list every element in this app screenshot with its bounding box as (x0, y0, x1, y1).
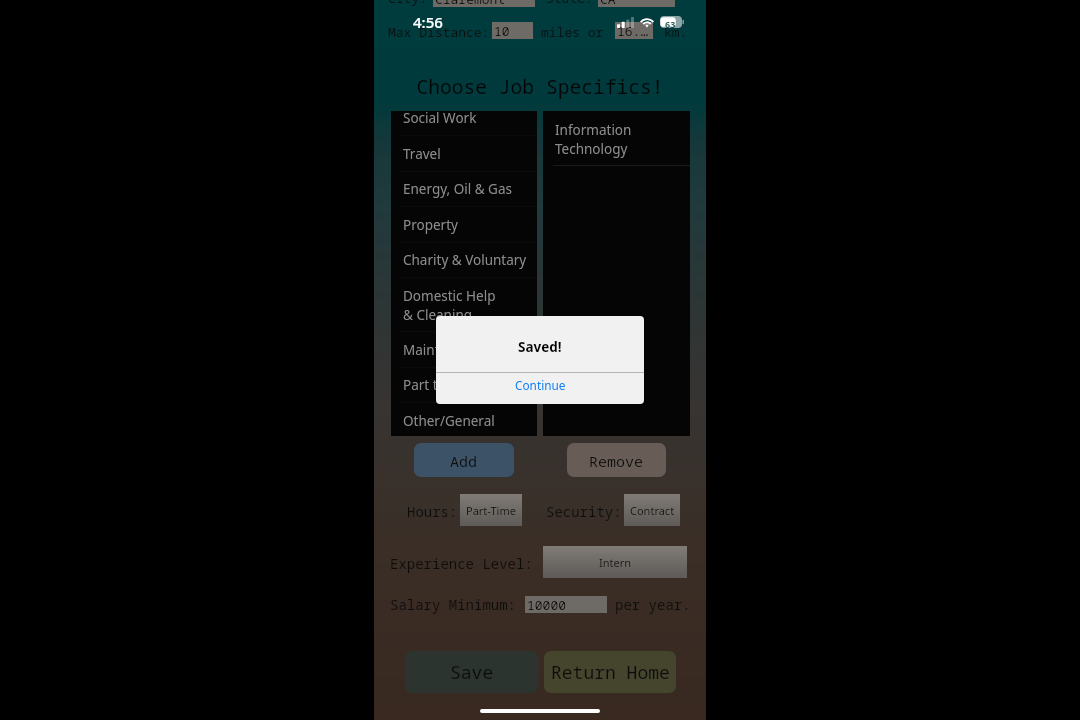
button[interactable]: Energy, Oil & Gas (391, 171, 537, 207)
staticText: Maintenance (403, 341, 486, 359)
staticText: Property (403, 216, 458, 234)
staticText: per year. (615, 595, 691, 614)
button[interactable]: 10000 (525, 596, 607, 613)
staticText: 16.… (617, 22, 649, 39)
staticText: km. (664, 23, 688, 41)
button[interactable]: Continue (436, 373, 644, 404)
staticText: miles or (541, 23, 604, 41)
button[interactable]: Information Technology (543, 112, 690, 166)
button[interactable]: Other/General (391, 403, 537, 436)
staticText: Return Home (551, 660, 670, 685)
staticText: Part time (403, 376, 462, 394)
staticText: State: (546, 0, 593, 7)
staticText: Hours: (407, 502, 458, 521)
button[interactable]: Property (391, 207, 537, 243)
staticText: Domestic Help & Cleaning (403, 287, 496, 323)
staticText: Remove (589, 451, 644, 471)
other: Cellular signal (617, 17, 634, 28)
button[interactable]: Charity & Voluntary (391, 242, 537, 278)
button[interactable]: 16.… (615, 22, 653, 39)
button[interactable]: Contract (624, 494, 680, 526)
button[interactable]: CA (598, 0, 675, 7)
staticText: 4:56 (413, 12, 443, 32)
button[interactable]: Social Work (391, 111, 537, 136)
button[interactable]: Claremont (433, 0, 535, 7)
staticText: Saved! (518, 338, 562, 356)
button[interactable]: Add (414, 443, 514, 477)
staticText: Intern (599, 555, 632, 570)
button[interactable]: Domestic Help & Cleaning (391, 278, 537, 332)
button[interactable]: Part-Time (460, 494, 522, 526)
staticText: 10 (494, 22, 510, 39)
staticText: Save (450, 660, 494, 685)
staticText: Charity & Voluntary (403, 251, 527, 269)
staticText: Energy, Oil & Gas (403, 180, 512, 198)
staticText: Continue (515, 377, 566, 393)
staticText: Social Work (403, 111, 477, 127)
button[interactable]: 10 (492, 22, 533, 39)
staticText: Travel (403, 145, 441, 163)
staticText: Add (450, 451, 478, 471)
button[interactable]: Part time (391, 367, 537, 403)
staticText: Contract (630, 503, 675, 518)
staticText: Experience Level: (390, 554, 533, 573)
other: Battery 63 percent (660, 16, 685, 28)
staticText: City: (388, 0, 428, 7)
staticText: 63 (665, 18, 676, 30)
staticText: Salary Minimum: (390, 595, 516, 614)
staticText: Choose Job Specifics! (374, 73, 706, 100)
button[interactable]: Intern (543, 546, 687, 578)
staticText: 10000 (527, 596, 567, 613)
button[interactable]: Save (405, 651, 538, 693)
staticText: Other/General (403, 412, 495, 430)
button[interactable]: Travel (391, 136, 537, 172)
button[interactable]: Remove (567, 443, 666, 477)
button[interactable]: Return Home (544, 651, 676, 693)
other: Wi-Fi (639, 17, 655, 28)
staticText: CA (600, 0, 616, 7)
button[interactable]: Maintenance (391, 332, 537, 368)
staticText: Part-Time (466, 503, 516, 518)
staticText: Claremont (435, 0, 506, 7)
staticText: Information Technology (555, 121, 632, 157)
staticText: Security: (546, 502, 622, 521)
staticText: Max Distance: (388, 23, 490, 41)
